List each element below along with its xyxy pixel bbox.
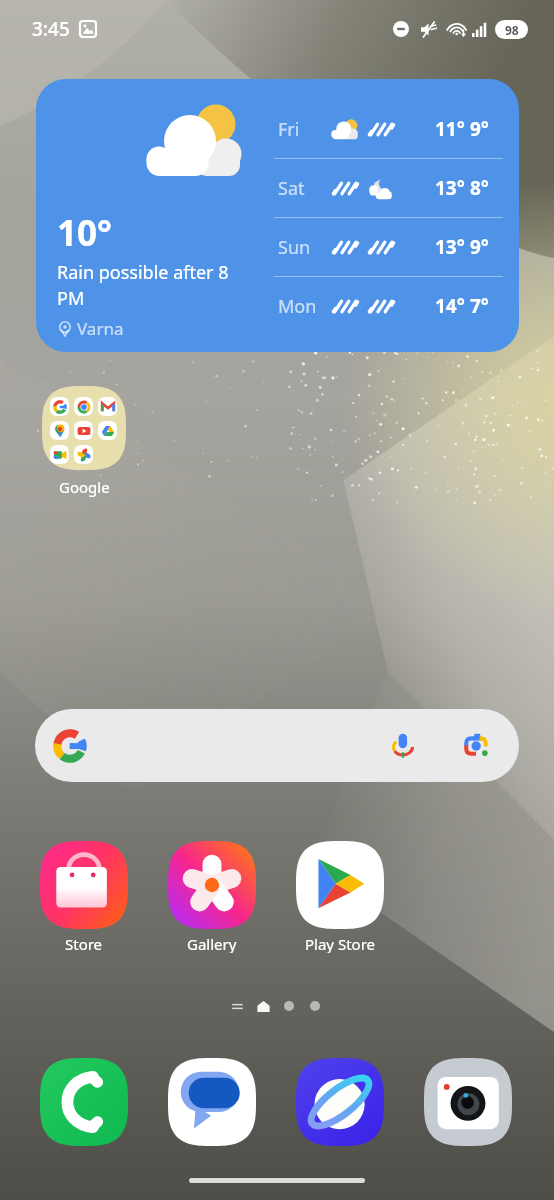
staticText: 8°: [470, 175, 489, 201]
button[interactable]: Camera: [424, 1058, 512, 1146]
staticText: Sat: [278, 176, 331, 201]
button[interactable]: Play Store: [280, 841, 400, 953]
staticText: 13°: [435, 234, 465, 260]
button[interactable]: Voice search: [35, 709, 519, 782]
staticText: Fri: [278, 117, 331, 142]
staticText: Play Store: [305, 934, 375, 953]
staticText: Store: [65, 934, 103, 953]
button[interactable]: Gallery: [152, 841, 272, 953]
button[interactable]: Internet: [296, 1058, 384, 1146]
staticText: 10°: [57, 209, 112, 257]
other: Voice search: [389, 732, 417, 760]
staticText: 9°: [470, 234, 489, 260]
staticText: Mon: [278, 294, 331, 319]
button[interactable]: Phone: [40, 1058, 128, 1146]
staticText: Gallery: [187, 934, 237, 953]
staticText: 3:45: [32, 16, 70, 42]
staticText: 13°: [435, 175, 465, 201]
button[interactable]: 10°: [36, 79, 519, 352]
staticText: 9°: [470, 116, 489, 142]
staticText: Rain possible after 8 PM: [57, 260, 253, 310]
button[interactable]: Messages: [168, 1058, 256, 1146]
staticText: 11°: [435, 116, 465, 142]
staticText: 7°: [470, 293, 489, 319]
staticText: 98: [505, 22, 519, 38]
staticText: Google: [59, 477, 110, 497]
staticText: Sun: [278, 235, 331, 260]
staticText: 14°: [435, 293, 465, 319]
other: App list: [232, 1001, 243, 1012]
button[interactable]: Google: [36, 386, 132, 497]
other: Google Lens: [461, 731, 491, 761]
button[interactable]: Store: [24, 841, 144, 953]
staticText: Varna: [77, 317, 124, 340]
